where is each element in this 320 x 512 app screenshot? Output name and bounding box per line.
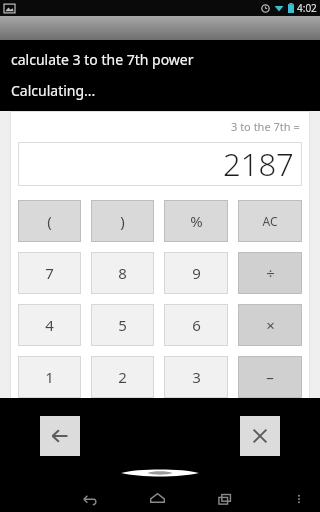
button[interactable]: More options	[284, 485, 314, 512]
staticText: 3 to the 7th =	[231, 119, 300, 134]
button[interactable]: )	[91, 200, 154, 242]
button[interactable]: 3	[164, 356, 228, 398]
staticText: (	[47, 211, 52, 231]
staticText: 3	[192, 367, 201, 387]
staticText: Calculating...	[11, 81, 96, 100]
staticText: 5	[118, 315, 127, 335]
button[interactable]: 4	[18, 304, 81, 346]
button[interactable]: Recent apps	[208, 485, 242, 512]
staticText: 8	[118, 263, 127, 283]
button[interactable]: 8	[91, 252, 154, 294]
staticText: 9	[192, 263, 201, 283]
button[interactable]: –	[238, 356, 302, 398]
staticText: +	[266, 419, 275, 439]
staticText: –	[266, 367, 274, 387]
staticText: ×	[266, 315, 275, 335]
button[interactable]: %	[164, 200, 228, 242]
button[interactable]: Home	[140, 485, 174, 512]
button[interactable]: 2187	[18, 142, 302, 186]
button[interactable]: 5	[91, 304, 154, 346]
button[interactable]: 1	[18, 356, 81, 398]
button[interactable]: 6	[164, 304, 228, 346]
button[interactable]: 2	[91, 356, 154, 398]
staticText: 1	[45, 367, 54, 387]
staticText: 2	[118, 367, 127, 387]
button[interactable]: Back	[40, 416, 80, 456]
staticText: 7	[45, 263, 54, 283]
button[interactable]: Back	[72, 485, 106, 512]
staticText: calculate 3 to the 7th power	[11, 50, 194, 69]
staticText: 2187	[223, 143, 294, 185]
staticText: %	[190, 211, 203, 231]
button[interactable]: 0	[18, 408, 81, 450]
staticText: 6	[192, 315, 201, 335]
button[interactable]: 9	[164, 252, 228, 294]
staticText: AC	[262, 213, 278, 229]
staticText: )	[120, 211, 125, 231]
button[interactable]: ×	[238, 304, 302, 346]
staticText: 4:02	[297, 1, 317, 15]
button[interactable]: Close	[240, 416, 280, 456]
button[interactable]: AC	[238, 200, 302, 242]
button[interactable]: (	[18, 200, 81, 242]
staticText: 0	[45, 419, 54, 439]
button[interactable]: ÷	[238, 252, 302, 294]
button[interactable]: +	[238, 408, 302, 450]
button[interactable]: 7	[18, 252, 81, 294]
staticText: ÷	[266, 263, 275, 283]
staticText: 4	[45, 315, 54, 335]
